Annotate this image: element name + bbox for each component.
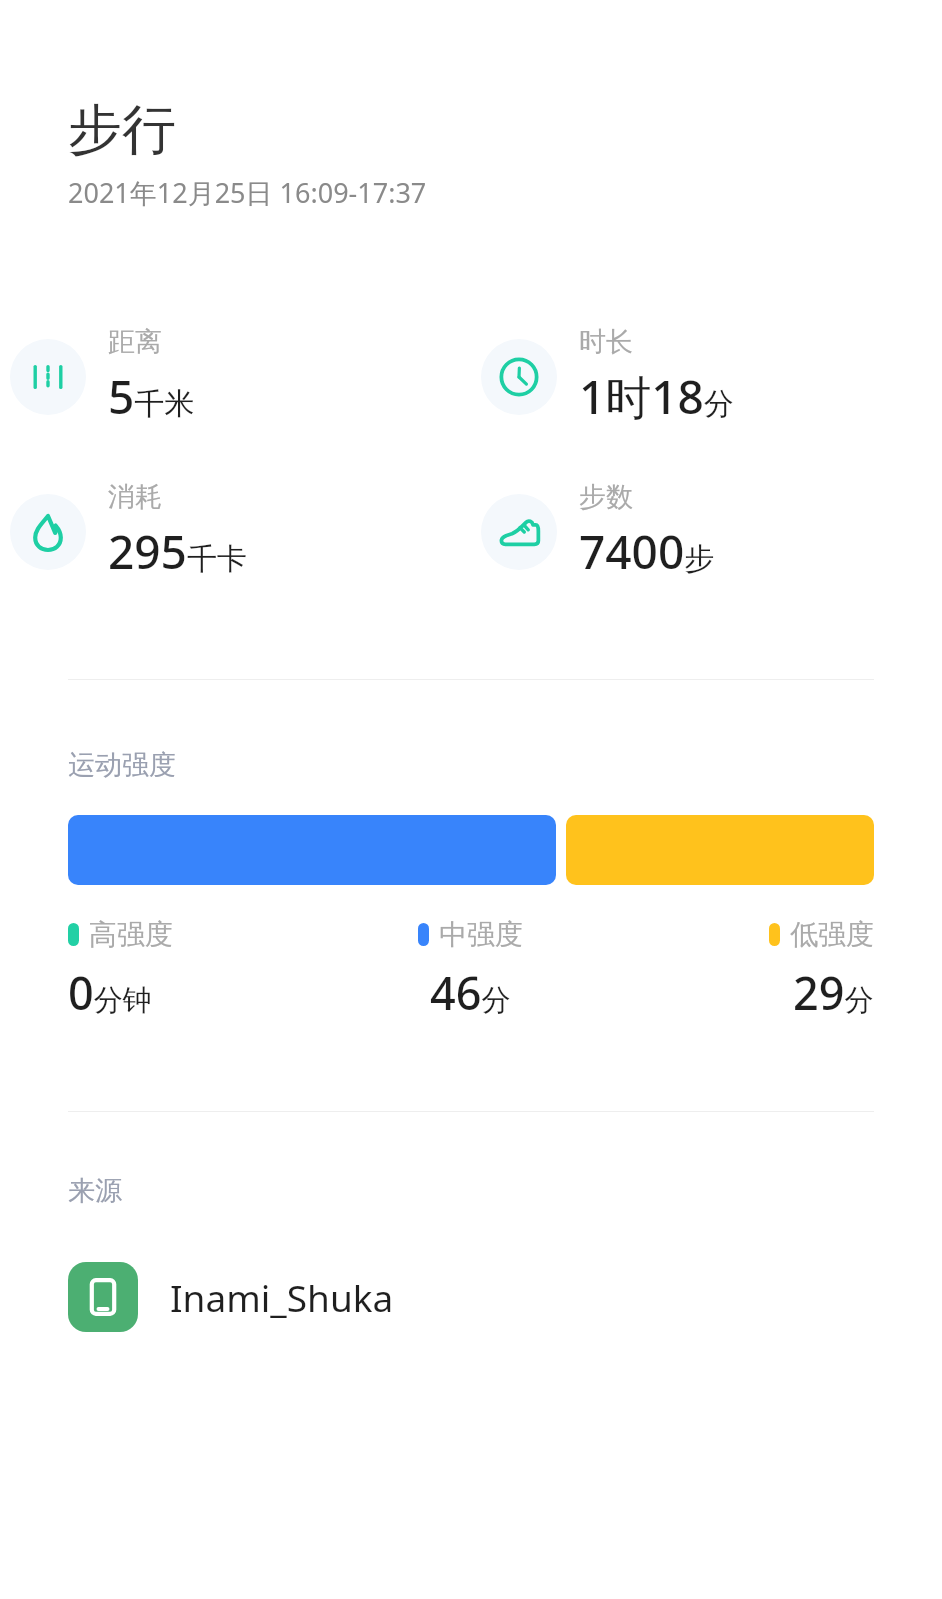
- staticText: 2021年12月25日 16:09-17:37: [68, 174, 427, 211]
- staticText: 46分: [430, 962, 511, 1023]
- staticText: 来源: [68, 1174, 122, 1208]
- button[interactable]: Duration: [471, 325, 942, 428]
- button[interactable]: Source device: [0, 1256, 942, 1338]
- staticText: 消耗: [108, 480, 162, 514]
- staticText: 距离: [108, 325, 162, 359]
- staticText: 时长: [579, 325, 633, 359]
- staticText: 高强度: [89, 917, 173, 952]
- staticText: 中强度: [439, 917, 523, 952]
- other: Distance: [10, 339, 86, 415]
- staticText: 29分: [793, 962, 874, 1023]
- other: Calories: [10, 494, 86, 570]
- staticText: 低强度: [790, 917, 874, 952]
- staticText: 0分钟: [68, 962, 152, 1023]
- button[interactable]: Distance: [0, 325, 471, 428]
- other: Steps: [481, 494, 557, 570]
- staticText: 5千米: [108, 365, 195, 428]
- staticText: Inami_Shuka: [170, 1272, 394, 1322]
- other: Source device: [68, 1262, 138, 1332]
- button[interactable]: Steps: [471, 480, 942, 583]
- button[interactable]: Calories: [0, 480, 471, 583]
- staticText: 295千卡: [108, 520, 247, 583]
- staticText: 步数: [579, 480, 633, 514]
- staticText: 7400步: [579, 520, 715, 583]
- staticText: 1时18分: [579, 365, 734, 428]
- other: Duration: [481, 339, 557, 415]
- staticText: 步行: [68, 96, 176, 164]
- staticText: 运动强度: [68, 748, 176, 782]
